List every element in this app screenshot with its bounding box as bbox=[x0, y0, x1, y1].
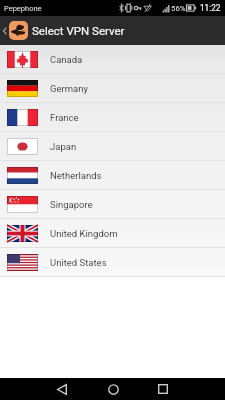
staticText: Pepephone bbox=[4, 4, 42, 13]
button[interactable]: Home bbox=[93, 378, 133, 400]
button[interactable]: United States bbox=[0, 248, 225, 276]
button[interactable]: Germany bbox=[0, 74, 225, 102]
staticText: Singapore bbox=[50, 199, 93, 210]
button[interactable]: Back bbox=[0, 16, 9, 45]
staticText: United States bbox=[50, 257, 107, 268]
staticText: France bbox=[50, 112, 79, 123]
staticText: Netherlands bbox=[50, 170, 102, 181]
staticText: 11:22 bbox=[200, 3, 221, 13]
staticText: Japan bbox=[50, 141, 77, 152]
staticText: United Kingdom bbox=[50, 228, 118, 239]
button[interactable]: Back bbox=[42, 378, 82, 400]
staticText: Canada bbox=[50, 54, 83, 65]
button[interactable]: Canada bbox=[0, 45, 225, 73]
button[interactable]: Singapore bbox=[0, 190, 225, 218]
button[interactable]: Recents bbox=[143, 378, 183, 400]
button[interactable]: France bbox=[0, 103, 225, 131]
button[interactable]: Japan bbox=[0, 132, 225, 160]
staticText: Germany bbox=[50, 83, 88, 94]
staticText: Select VPN Server bbox=[32, 24, 125, 37]
staticText: 56% bbox=[171, 4, 186, 13]
button[interactable]: Netherlands bbox=[0, 161, 225, 189]
button[interactable]: United Kingdom bbox=[0, 219, 225, 247]
